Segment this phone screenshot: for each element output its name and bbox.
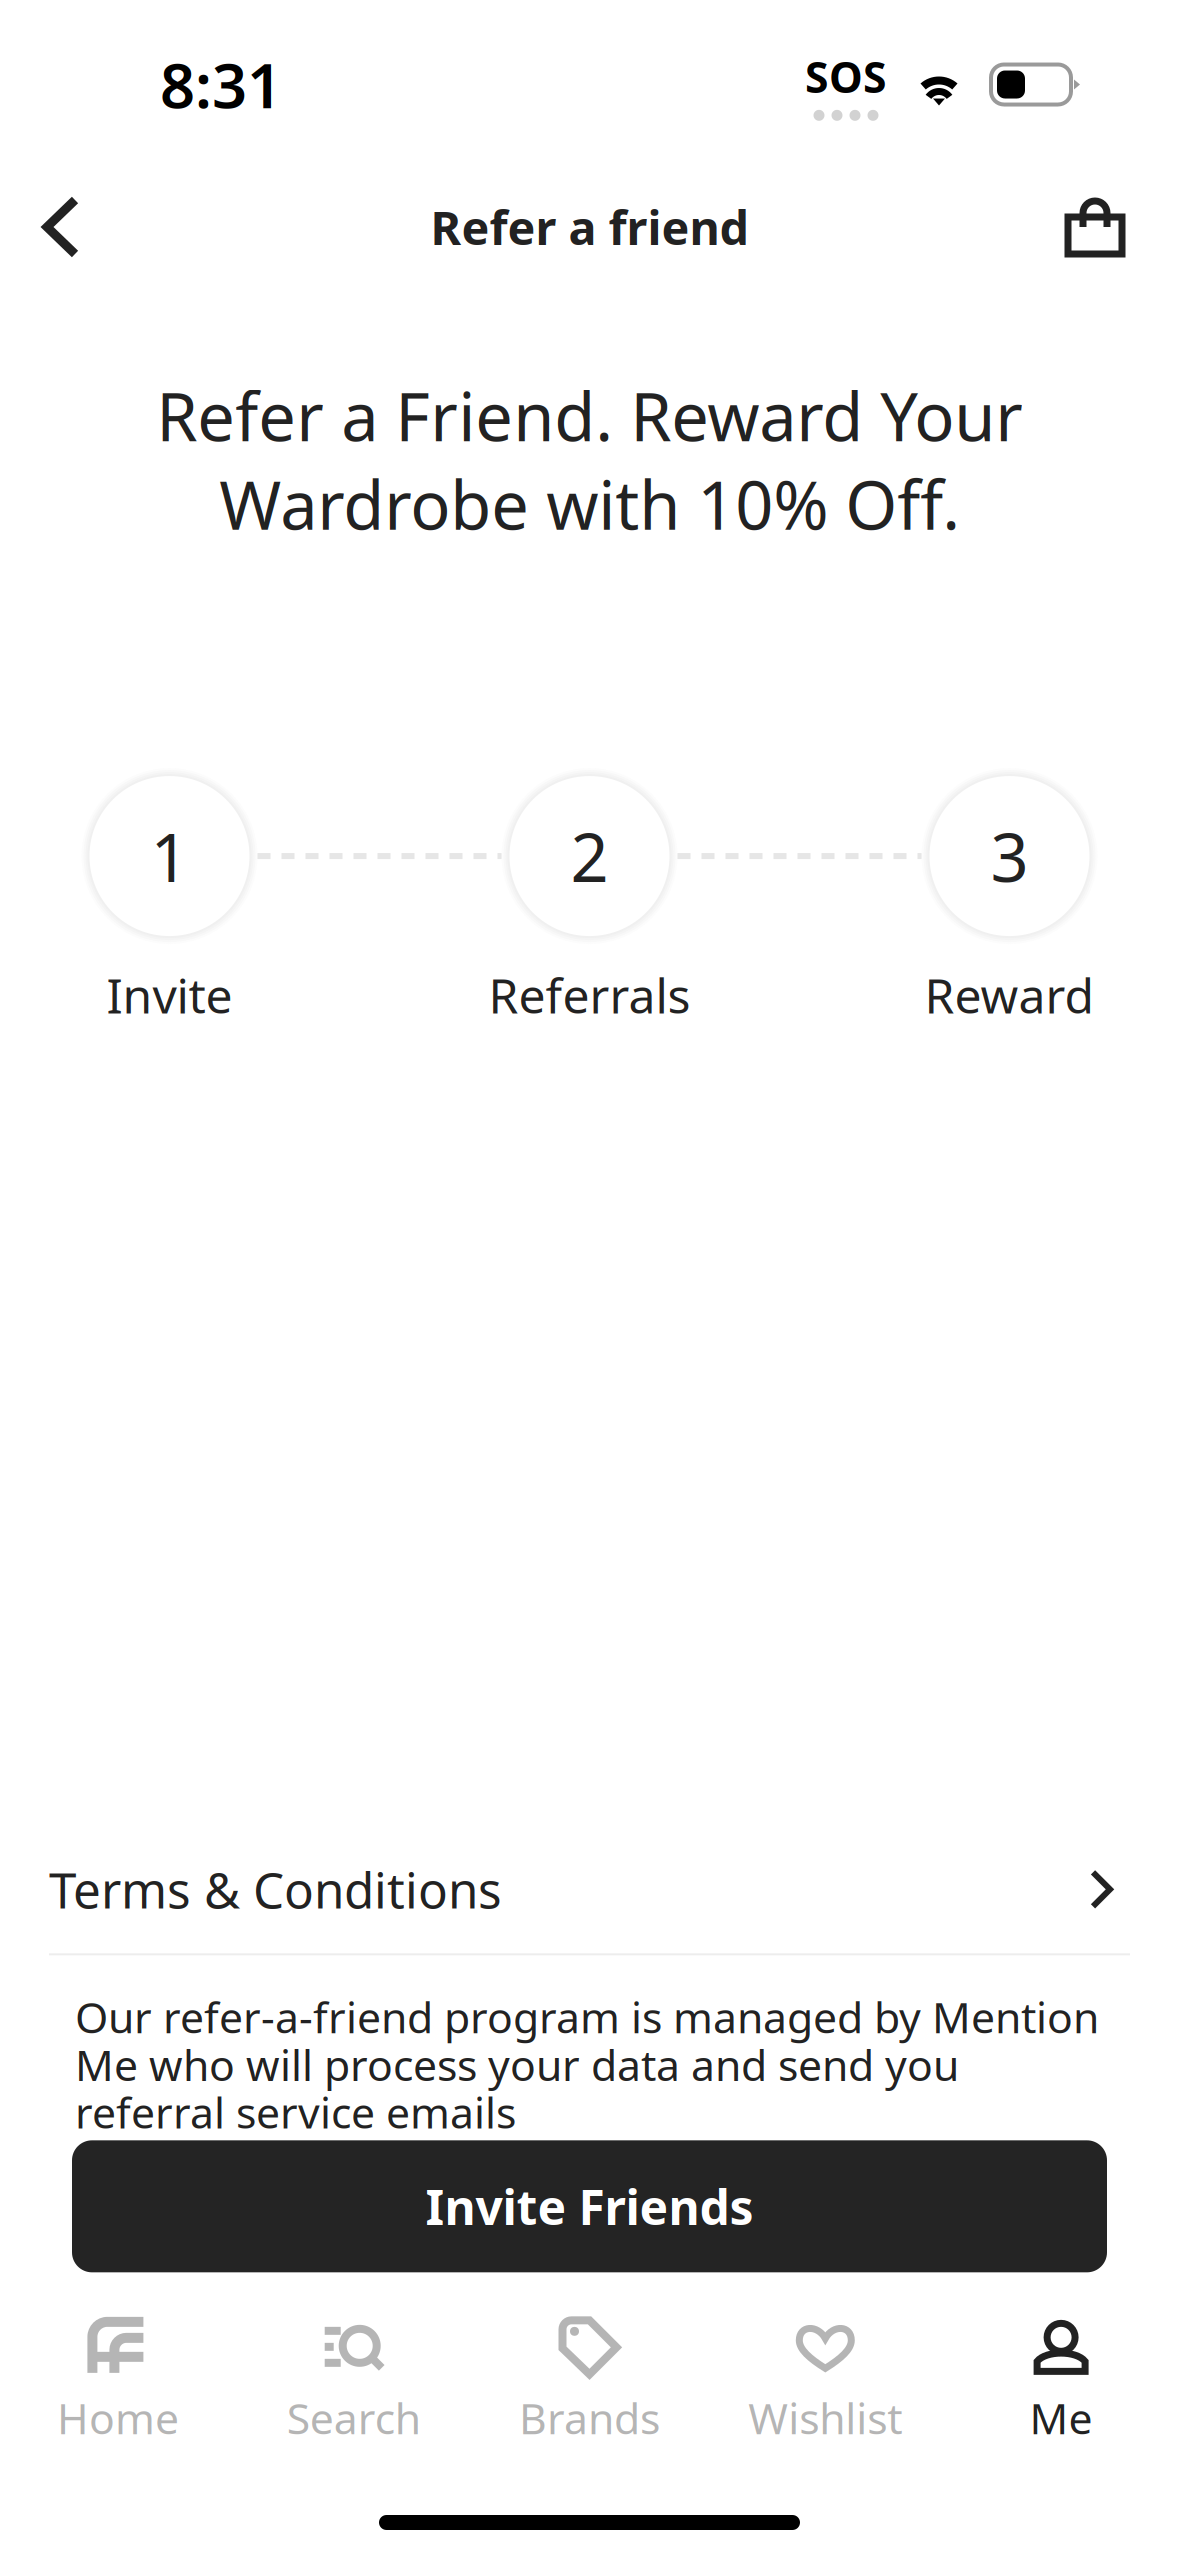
staticText: 1: [150, 812, 188, 900]
staticText: 2: [570, 812, 608, 900]
button[interactable]: Terms & Conditions: [0, 1825, 1179, 1953]
button[interactable]: Me: [943, 2311, 1179, 2446]
button[interactable]: Brands: [472, 2311, 707, 2446]
button[interactable]: Back: [0, 175, 104, 279]
button[interactable]: Invite Friends: [72, 2140, 1107, 2272]
staticText: Invite: [106, 963, 232, 1027]
staticText: Refer a Friend. Reward Your Wardrobe wit…: [156, 371, 1023, 548]
button[interactable]: Wishlist: [707, 2311, 943, 2446]
staticText: Wishlist: [748, 2389, 902, 2446]
staticText: Reward: [924, 963, 1094, 1027]
staticText: SOS: [805, 48, 887, 105]
staticText: 8:31: [160, 44, 282, 125]
staticText: Refer a friend: [430, 196, 748, 258]
staticText: Terms & Conditions: [49, 1857, 502, 1922]
staticText: Brands: [519, 2389, 660, 2446]
button[interactable]: Shopping bag: [1041, 175, 1179, 279]
staticText: Our refer-a-friend program is managed by…: [75, 1988, 1099, 2140]
staticText: 3: [990, 812, 1028, 900]
staticText: Referrals: [488, 963, 690, 1027]
staticText: Me: [1030, 2389, 1093, 2446]
staticText: Invite Friends: [425, 2174, 753, 2238]
button[interactable]: Home: [0, 2311, 236, 2446]
staticText: Home: [57, 2389, 179, 2446]
button[interactable]: Search: [236, 2311, 472, 2446]
staticText: Search: [287, 2389, 421, 2446]
